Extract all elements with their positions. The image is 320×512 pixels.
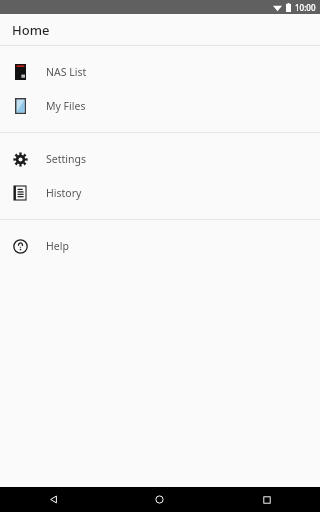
staticText: My Files (46, 99, 86, 113)
button[interactable]: Settings (0, 142, 320, 176)
staticText: Settings (46, 152, 86, 166)
button[interactable]: Recent apps (213, 487, 320, 512)
staticText: Help (46, 239, 69, 253)
button[interactable]: My Files (0, 89, 320, 123)
button[interactable]: Help (0, 229, 320, 263)
staticText: NAS List (46, 65, 87, 79)
staticText: History (46, 186, 82, 200)
staticText: 10:00 (295, 2, 316, 13)
button[interactable]: NAS List (0, 55, 320, 89)
staticText: Home (12, 21, 50, 39)
button[interactable]: Back (0, 487, 106, 512)
button[interactable]: Home (106, 487, 213, 512)
button[interactable]: History (0, 176, 320, 210)
